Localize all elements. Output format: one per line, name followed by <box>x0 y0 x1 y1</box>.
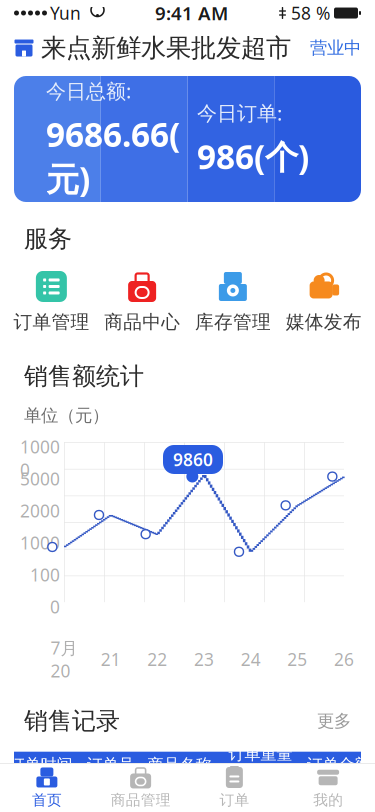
staticText: 1000 <box>20 531 60 554</box>
button[interactable]: 我的 <box>281 763 375 812</box>
button[interactable]: 订单管理 <box>6 267 97 335</box>
staticText: 5000 <box>20 467 60 490</box>
button[interactable]: 订单 <box>187 763 281 812</box>
staticText: 媒体发布 <box>286 310 362 333</box>
button[interactable]: 更多 <box>317 710 351 732</box>
staticText: 今日总额: <box>46 77 131 104</box>
staticText: 今日订单: <box>197 100 282 126</box>
staticText: 22 <box>147 648 167 671</box>
staticText: 23 <box>194 648 214 671</box>
staticText: 订单金额 <box>306 755 370 775</box>
staticText: 商品名称 <box>147 755 211 775</box>
staticText: 服务 <box>24 224 72 253</box>
staticText: 销售额统计 <box>24 361 144 391</box>
staticText: 21 <box>101 648 121 671</box>
button[interactable]: 媒体发布 <box>278 267 369 335</box>
staticText: 我的 <box>313 791 343 809</box>
staticText: 来点新鲜水果批发超市 <box>41 32 291 63</box>
staticText: 订单号 <box>86 755 134 775</box>
staticText: 9686.66(元) <box>46 112 180 200</box>
staticText: 订单管理 <box>13 310 89 333</box>
staticText: 库存管理 <box>195 310 271 333</box>
staticText: 销售记录 <box>24 706 120 736</box>
staticText: 9:41 AM <box>155 1 228 25</box>
button[interactable]: 首页 <box>0 763 94 812</box>
staticText: 商品中心 <box>104 310 180 333</box>
staticText: 58 % <box>291 1 330 24</box>
staticText: 24 <box>241 648 261 671</box>
staticText: 986(个) <box>197 134 309 178</box>
staticText: 订单 <box>219 791 249 809</box>
button[interactable]: 库存管理 <box>187 267 278 335</box>
staticText: 更多 <box>317 710 351 732</box>
staticText: 订单重量(斤) <box>228 744 292 785</box>
staticText: 商品管理 <box>111 791 171 809</box>
button[interactable]: 营业中 <box>310 37 361 59</box>
staticText: 营业中 <box>310 37 361 59</box>
staticText: 单位（元） <box>24 405 109 426</box>
staticText: Yun <box>50 1 81 24</box>
staticText: 26 <box>334 648 354 671</box>
staticText: 订单时间 <box>8 755 72 775</box>
staticText: 9860 <box>173 448 213 471</box>
staticText: 100 <box>30 563 60 586</box>
staticText: 首页 <box>32 791 62 809</box>
staticText: 25 <box>287 648 307 671</box>
button[interactable]: 商品管理 <box>94 763 188 812</box>
button[interactable]: 商品中心 <box>97 267 188 335</box>
staticText: 0 <box>50 595 60 618</box>
staticText: 7月20 <box>50 636 77 682</box>
staticText: 10000 <box>20 435 60 481</box>
staticText: 2000 <box>20 499 60 522</box>
